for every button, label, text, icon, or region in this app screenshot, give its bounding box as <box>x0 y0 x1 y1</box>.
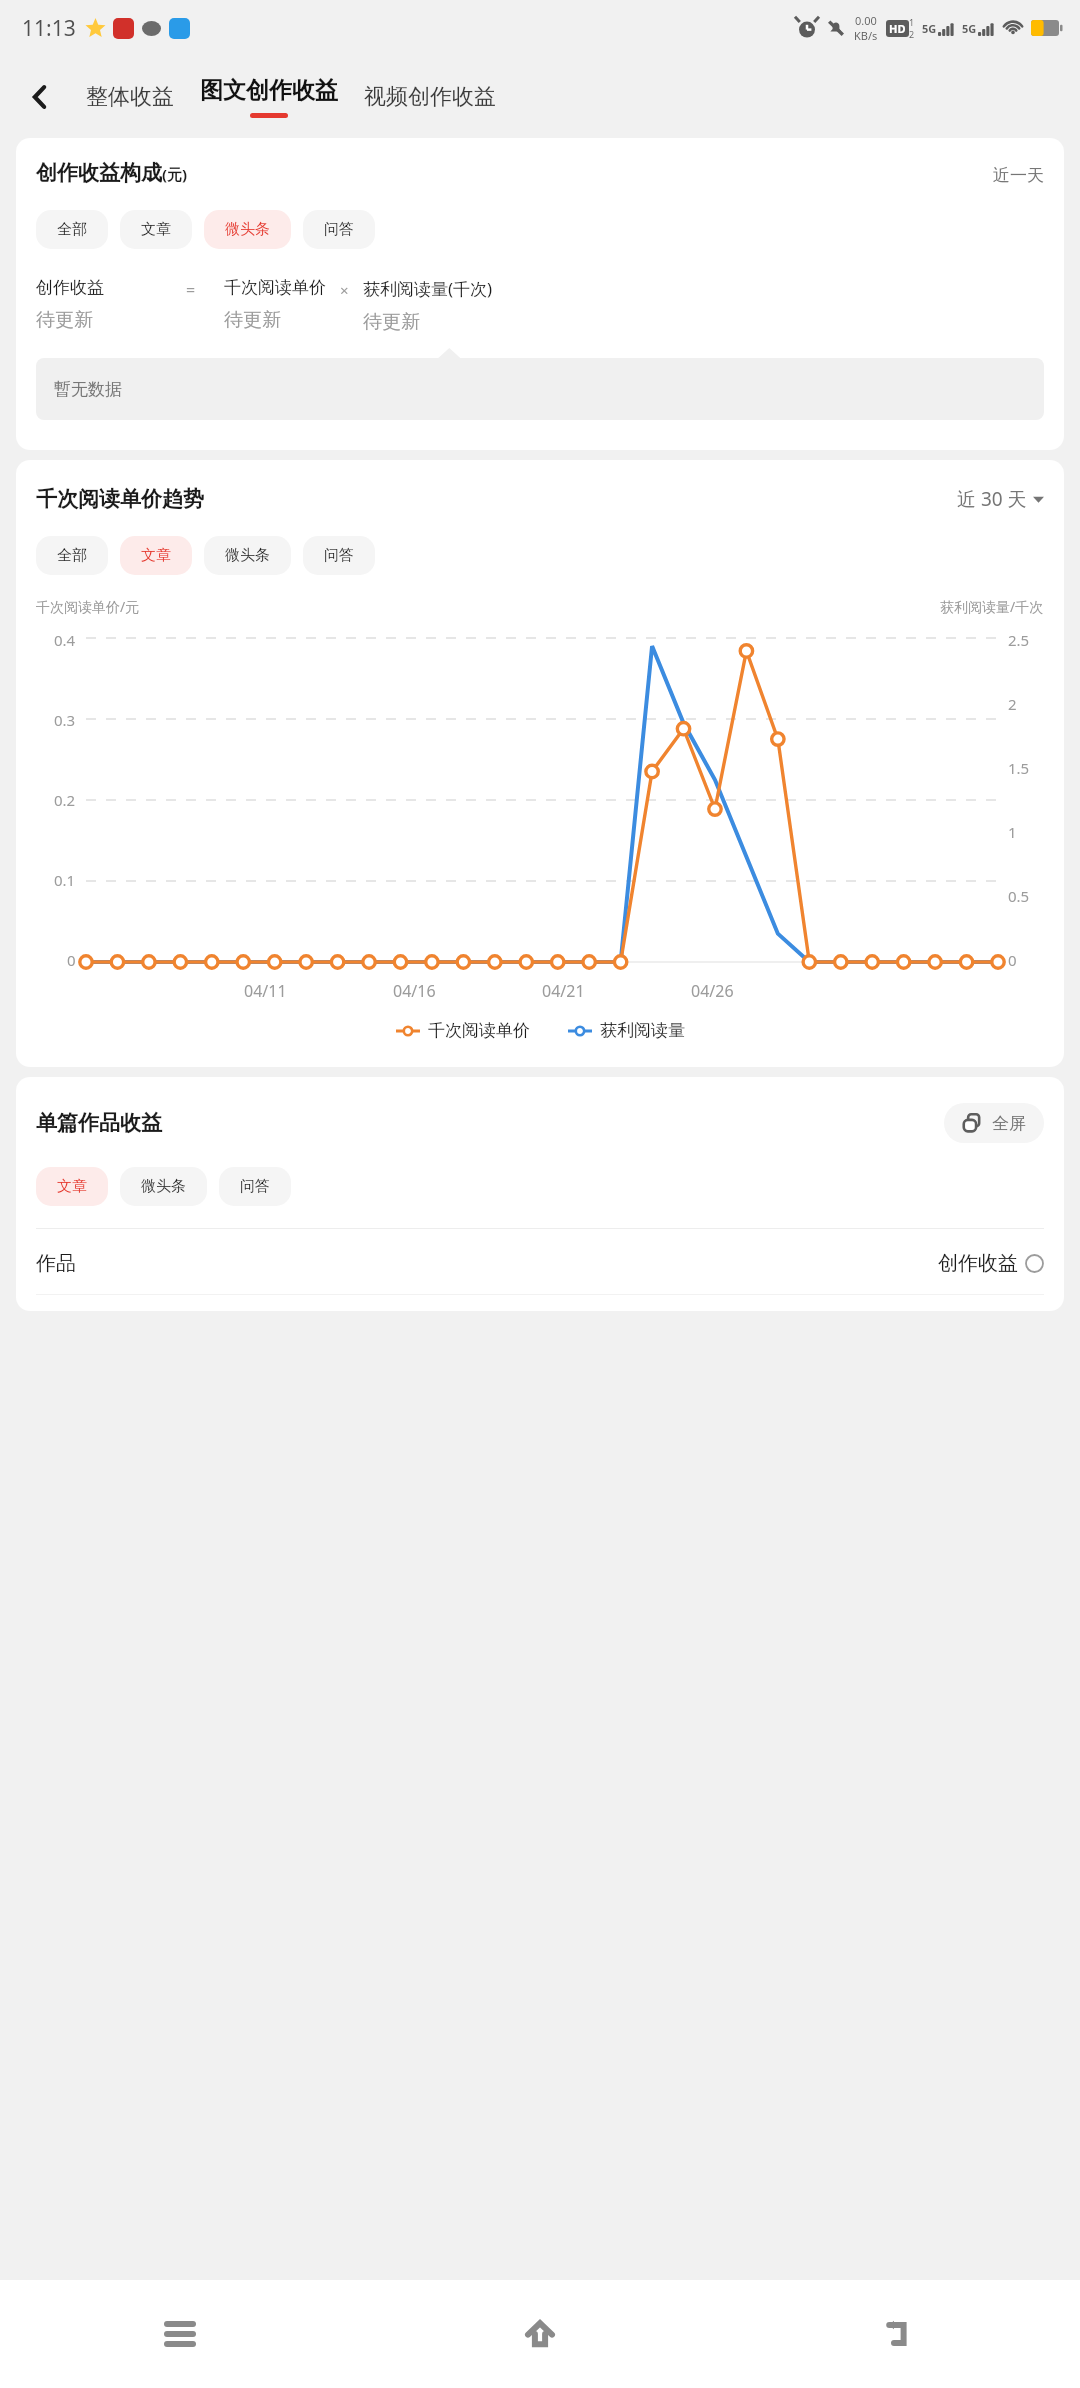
staticText: 获利阅读量 <box>600 1020 685 1041</box>
staticText: 获利阅读量/千次 <box>940 597 1044 616</box>
staticText: 微头条 <box>225 546 270 565</box>
staticText: 1 <box>909 16 915 28</box>
staticText: 千次阅读单价/元 <box>36 597 140 616</box>
staticText: 04/26 <box>691 980 734 1002</box>
button[interactable]: Home <box>360 2280 720 2388</box>
staticText: 图文创作收益 <box>200 76 338 105</box>
staticText: 千次阅读单价 <box>224 277 326 298</box>
staticText: 待更新 <box>363 310 420 334</box>
staticText: 1.5 <box>1008 758 1030 778</box>
staticText: 问答 <box>240 1177 270 1196</box>
button[interactable]: 文章 <box>120 536 192 575</box>
staticText: 0.4 <box>54 630 76 650</box>
staticText: 微头条 <box>225 220 270 239</box>
staticText: KB/s <box>854 28 878 43</box>
staticText: 0.00 <box>855 13 877 28</box>
staticText: 微头条 <box>141 1177 186 1196</box>
button[interactable]: Back <box>720 2280 1080 2388</box>
button[interactable]: 图文创作收益 <box>196 76 342 118</box>
staticText: 04/16 <box>393 980 436 1002</box>
button[interactable]: 获利阅读量 <box>568 1020 685 1041</box>
staticText: 全部 <box>57 546 87 565</box>
staticText: 问答 <box>324 546 354 565</box>
staticText: 1 <box>1008 822 1017 842</box>
staticText: 待更新 <box>36 308 93 332</box>
button[interactable]: 微头条 <box>204 536 291 575</box>
staticText: 创作收益 <box>938 1251 1018 1276</box>
button[interactable]: Back <box>0 56 80 138</box>
button[interactable]: 视频创作收益 <box>358 63 502 131</box>
button[interactable]: 微头条 <box>120 1167 207 1206</box>
button[interactable]: 近一天 <box>993 165 1044 186</box>
staticText: 暫无数据 <box>54 379 122 400</box>
button[interactable]: 文章 <box>36 1167 108 1206</box>
other: 帮助 <box>1025 1254 1044 1273</box>
button[interactable]: 问答 <box>303 536 375 575</box>
staticText: (元) <box>162 164 188 184</box>
button[interactable]: 问答 <box>303 210 375 249</box>
staticText: HD <box>889 21 906 36</box>
button[interactable]: 整体收益 <box>80 63 180 131</box>
staticText: 04/11 <box>244 980 287 1002</box>
staticText: 问答 <box>324 220 354 239</box>
staticText: 获利阅读量(千次) <box>363 277 493 300</box>
staticText: 0 <box>1008 950 1017 970</box>
staticText: 全部 <box>57 220 87 239</box>
staticText: 0.3 <box>54 710 76 730</box>
staticText: 04/21 <box>542 980 585 1002</box>
staticText: 千次阅读单价趋势 <box>36 486 204 512</box>
button[interactable]: 全部 <box>36 210 108 249</box>
staticText: 2 <box>909 28 915 40</box>
staticText: 5G <box>962 21 977 36</box>
staticText: 全屏 <box>992 1113 1026 1134</box>
staticText: 近 30 天 <box>957 486 1027 512</box>
staticText: 创作收益构成 <box>36 160 162 186</box>
staticText: 2 <box>1008 694 1017 714</box>
button[interactable]: 全部 <box>36 536 108 575</box>
staticText: × <box>340 280 349 300</box>
staticText: 待更新 <box>224 308 281 332</box>
staticText: 文章 <box>141 546 171 565</box>
staticText: 0.5 <box>1008 886 1030 906</box>
staticText: 整体收益 <box>86 83 174 111</box>
staticText: 视频创作收益 <box>364 83 496 111</box>
staticText: = <box>186 279 196 301</box>
staticText: 0 <box>67 950 76 970</box>
staticText: 单篇作品收益 <box>36 1110 162 1136</box>
staticText: 5G <box>922 21 937 36</box>
staticText: 2.5 <box>1008 630 1030 650</box>
staticText: 千次阅读单价 <box>428 1020 530 1041</box>
staticText: 作品 <box>36 1251 76 1276</box>
staticText: 文章 <box>57 1177 87 1196</box>
button[interactable]: 近 30 天 <box>957 486 1044 512</box>
staticText: 创作收益 <box>36 277 104 298</box>
staticText: 11:13 <box>22 14 76 43</box>
button[interactable]: Recent apps <box>0 2280 360 2388</box>
button[interactable]: 全屏 <box>944 1103 1044 1143</box>
staticText: 文章 <box>141 220 171 239</box>
button[interactable]: 千次阅读单价 <box>396 1020 530 1041</box>
staticText: 近一天 <box>993 165 1044 186</box>
staticText: 0.2 <box>54 790 76 810</box>
button[interactable]: 文章 <box>120 210 192 249</box>
button[interactable]: 问答 <box>219 1167 291 1206</box>
staticText: 0.1 <box>54 870 76 890</box>
button[interactable]: 微头条 <box>204 210 291 249</box>
